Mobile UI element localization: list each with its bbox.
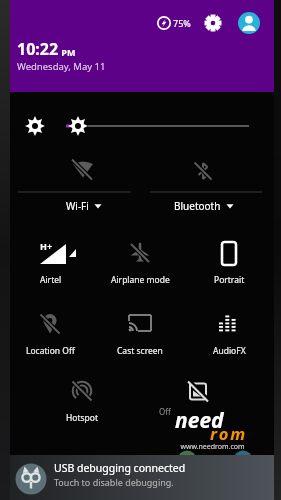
staticText: Hotspot xyxy=(66,412,99,424)
staticText: Wednesday, May 11 xyxy=(17,60,106,73)
staticText: Location Off xyxy=(26,345,75,357)
staticText: Off xyxy=(159,406,171,417)
button[interactable] xyxy=(238,12,260,34)
button[interactable]: Airtel xyxy=(9,230,93,292)
button[interactable] xyxy=(203,13,223,33)
staticText: Bluetooth xyxy=(174,199,221,213)
button[interactable]: AudioFX xyxy=(187,301,271,363)
staticText: H+ xyxy=(40,240,53,252)
button[interactable] xyxy=(14,150,140,218)
staticText: Portrait xyxy=(214,274,245,286)
staticText: Airtel xyxy=(40,274,62,286)
staticText: Airplane mode xyxy=(111,274,170,286)
button[interactable]: Hotspot xyxy=(40,368,124,430)
staticText: AudioFX xyxy=(213,345,246,357)
button[interactable]: Cast screen xyxy=(98,301,182,363)
staticText: Cast screen xyxy=(117,345,163,357)
staticText: www.needrom.com xyxy=(180,442,245,452)
button[interactable] xyxy=(156,368,240,430)
staticText: rom xyxy=(210,422,248,444)
button[interactable]: Airplane mode xyxy=(98,230,182,292)
staticText: Touch to disable debugging. xyxy=(54,476,174,488)
button[interactable]: Portrait xyxy=(187,230,271,292)
button[interactable] xyxy=(146,150,268,218)
staticText: USB debugging connected xyxy=(54,461,186,475)
staticText: need xyxy=(175,406,224,435)
staticText: Wi-Fi xyxy=(66,199,89,213)
staticText: 10:22 xyxy=(17,38,59,60)
button[interactable]: USB debugging connected xyxy=(10,455,274,500)
staticText: 75% xyxy=(173,17,191,29)
staticText: PM xyxy=(59,46,76,58)
button[interactable]: Location Off xyxy=(8,301,92,363)
